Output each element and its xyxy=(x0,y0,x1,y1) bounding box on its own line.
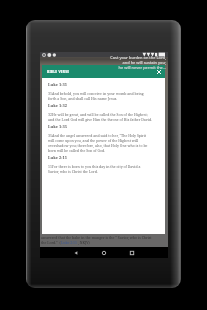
button[interactable]: Home xyxy=(90,247,118,258)
button[interactable]: Recents xyxy=(118,247,146,258)
button[interactable]: BIBLE VERSE xyxy=(42,65,165,78)
staticText: Luke 2:11 xyxy=(48,155,68,160)
staticText: 11For there is born to you this day in t… xyxy=(48,164,152,174)
staticText: Cast your burden on the Lord, and he wil… xyxy=(110,55,166,70)
button[interactable]: Luke 2:11 xyxy=(61,240,78,245)
staticText: , NKJV) xyxy=(78,240,90,245)
staticText: the Lord.” ( xyxy=(41,240,61,245)
button[interactable]: Back xyxy=(62,247,90,258)
staticText: BIBLE VERSE xyxy=(47,69,70,74)
button: BIBLE VERSE xyxy=(42,65,165,234)
staticText: 31And behold, you will conceive in your … xyxy=(48,91,152,101)
staticText: 32He will be great, and will be called t… xyxy=(48,112,152,122)
staticText: answered that the babe in the manger is … xyxy=(41,235,152,240)
staticText: Luke 1:35 xyxy=(48,124,68,129)
staticText: 35And the angel answered and said to her… xyxy=(48,133,152,153)
staticText: Luke 1:31 xyxy=(48,82,68,87)
button[interactable]: Close xyxy=(152,65,165,78)
staticText: Luke 1:32 xyxy=(48,103,68,108)
